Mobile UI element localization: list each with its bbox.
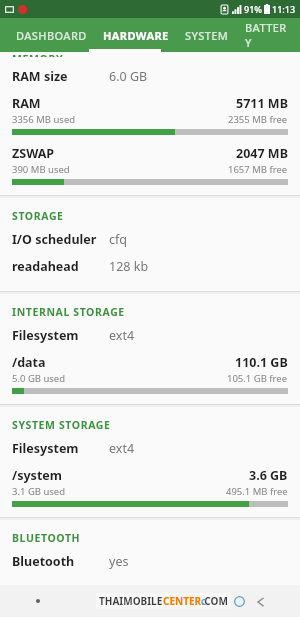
staticText: Filesystem — [12, 327, 79, 344]
button[interactable]: /data — [0, 349, 300, 399]
staticText: Bluetooth — [12, 553, 75, 570]
staticText: MEMORY — [12, 52, 64, 57]
button[interactable]: Bluetooth — [0, 548, 300, 575]
button[interactable]: Recents — [0, 585, 75, 617]
staticText: cfq — [109, 231, 127, 248]
button[interactable]: RAM — [0, 90, 300, 140]
button[interactable]: Filesystem — [0, 435, 300, 462]
button[interactable]: RAM size — [0, 63, 300, 90]
staticText: 3356 MB used — [12, 113, 76, 126]
staticText: .COM — [202, 594, 228, 608]
staticText: STORAGE — [12, 209, 64, 223]
staticText: HARDWARE — [103, 28, 169, 43]
button[interactable]: I/O scheduler — [0, 226, 300, 253]
button[interactable]: Back — [225, 585, 300, 617]
staticText: 5.0 GB used — [12, 372, 66, 385]
button[interactable]: DASHBOARD — [8, 18, 95, 52]
staticText: /data — [12, 354, 46, 371]
staticText: ext4 — [109, 327, 135, 344]
button[interactable]: HARDWARE — [95, 18, 177, 52]
staticText: BATTERY — [245, 20, 292, 50]
staticText: 128 kb — [109, 258, 149, 275]
staticText: 390 MB used — [12, 163, 70, 176]
staticText: RAM size — [12, 68, 68, 85]
button[interactable]: readahead — [0, 253, 300, 280]
staticText: BLUETOOTH — [12, 531, 81, 545]
staticText: ZSWAP — [12, 145, 55, 162]
staticText: DASHBOARD — [16, 28, 87, 43]
staticText: 3.6 GB — [249, 467, 288, 484]
staticText: 1657 MB free — [228, 163, 288, 176]
staticText: /system — [12, 467, 62, 484]
staticText: SYSTEM STORAGE — [12, 418, 111, 432]
staticText: INTERNAL STORAGE — [12, 305, 125, 319]
staticText: 495.1 MB free — [226, 485, 288, 498]
staticText: ext4 — [109, 440, 135, 457]
staticText: RAM — [12, 95, 41, 112]
button[interactable]: Home — [150, 585, 225, 617]
staticText: 3.1 GB used — [12, 485, 66, 498]
staticText: THAIMOBILE — [99, 594, 163, 608]
staticText: SYSTEM — [185, 28, 229, 43]
staticText: C — [201, 596, 207, 607]
button[interactable]: BATTERY — [237, 18, 300, 52]
staticText: 2355 MB free — [228, 113, 288, 126]
button[interactable]: SYSTEM — [177, 18, 237, 52]
staticText: I/O scheduler — [12, 231, 97, 248]
button[interactable]: /system — [0, 462, 300, 512]
staticText: yes — [109, 553, 129, 570]
staticText: 5711 MB — [236, 95, 288, 112]
button[interactable]: Filesystem — [0, 322, 300, 349]
staticText: readahead — [12, 258, 79, 275]
button[interactable]: ZSWAP — [0, 140, 300, 190]
staticText: 2047 MB — [236, 145, 288, 162]
staticText: 91% — [244, 3, 262, 15]
staticText: Filesystem — [12, 440, 79, 457]
staticText: 105.1 GB free — [227, 372, 288, 385]
staticText: 6.0 GB — [109, 68, 148, 85]
staticText: 110.1 GB — [235, 354, 288, 371]
staticText: CENTER — [163, 594, 202, 608]
button[interactable]: Multi window — [75, 585, 150, 617]
staticText: 11:13 — [272, 3, 296, 15]
